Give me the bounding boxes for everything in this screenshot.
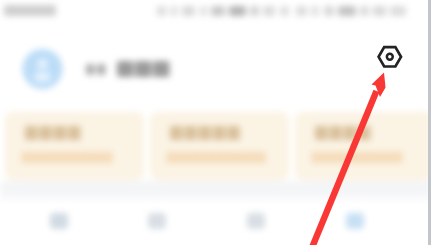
button[interactable] bbox=[8, 112, 141, 180]
button[interactable] bbox=[285, 112, 417, 180]
button[interactable]: Tab 4 bbox=[323, 196, 431, 245]
button[interactable]: Settings bbox=[372, 39, 408, 75]
button[interactable]: Tab 3 bbox=[215, 196, 323, 245]
button[interactable]: Tab 2 bbox=[107, 196, 215, 245]
button[interactable] bbox=[147, 112, 279, 180]
button[interactable]: Tab 1 bbox=[0, 196, 107, 245]
